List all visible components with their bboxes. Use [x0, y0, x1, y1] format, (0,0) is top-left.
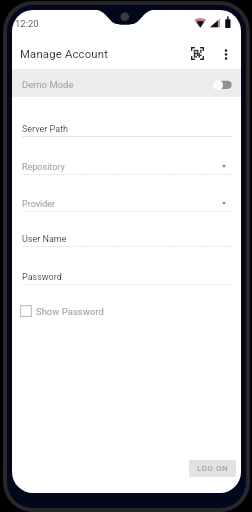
button[interactable]: LOG ON [189, 460, 236, 477]
staticText: Manage Account [20, 48, 109, 61]
button[interactable]: User Name [22, 229, 231, 246]
button[interactable]: Provider [22, 194, 231, 211]
staticText: User Name [22, 234, 67, 245]
button[interactable]: Scan QR code [185, 41, 210, 66]
button[interactable]: Server Path [22, 119, 231, 136]
staticText: Repository [22, 162, 65, 173]
button[interactable]: More options [214, 42, 238, 66]
staticText: Password [22, 272, 62, 283]
button[interactable]: Repository [22, 157, 231, 174]
staticText: LOG ON [197, 464, 229, 473]
staticText: Server Path [22, 124, 69, 135]
staticText: Demo Mode [22, 79, 74, 90]
staticText: 12:20 [15, 18, 39, 29]
button[interactable]: Demo Mode [12, 69, 241, 97]
staticText: Provider [22, 199, 56, 210]
staticText: Show Password [36, 306, 104, 317]
button[interactable]: Password [22, 267, 231, 284]
button[interactable]: Show Password [20, 303, 104, 319]
